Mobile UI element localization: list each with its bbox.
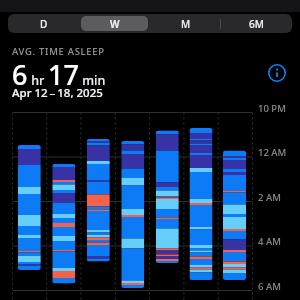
staticText: 12 AM — [258, 146, 287, 159]
button[interactable]: D — [8, 14, 79, 33]
button[interactable] — [266, 62, 288, 84]
staticText: Apr 12 – 18, 2025 — [12, 85, 103, 101]
button[interactable]: M — [150, 14, 221, 33]
staticText: hr — [28, 72, 48, 89]
staticText: D — [40, 17, 48, 31]
button[interactable]: 6M — [221, 14, 292, 33]
staticText: AVG. TIME ASLEEP — [12, 45, 105, 58]
staticText: M — [181, 17, 191, 31]
staticText: W — [110, 17, 120, 31]
staticText: 2 AM — [258, 191, 281, 204]
button[interactable]: W — [79, 14, 150, 33]
staticText: 6M — [249, 17, 264, 31]
staticText: 6 AM — [258, 280, 281, 293]
staticText: min — [79, 72, 106, 89]
staticText: 10 PM — [258, 102, 286, 115]
staticText: 17 — [48, 56, 79, 93]
staticText: 4 AM — [258, 235, 281, 248]
staticText: 6 — [12, 56, 28, 93]
